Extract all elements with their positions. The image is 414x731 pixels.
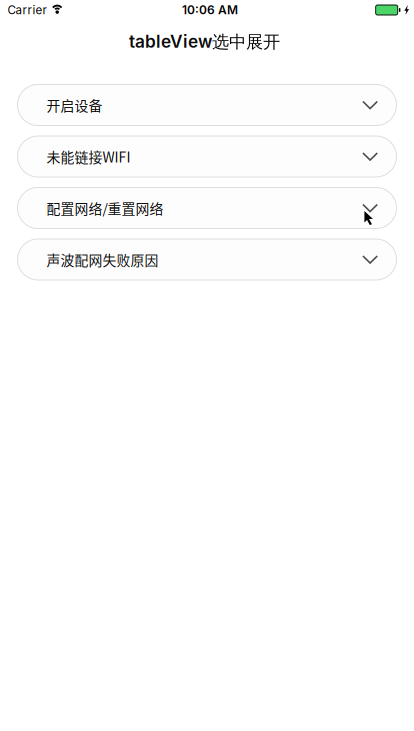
- staticText: 开启设备: [46, 95, 102, 115]
- staticText: tableView选中展开: [129, 31, 280, 53]
- button[interactable]: 开启设备: [17, 84, 396, 125]
- button[interactable]: 未能链接WIFI: [17, 136, 396, 177]
- staticText: 10:06 AM: [182, 3, 238, 17]
- staticText: 配置网络/重置网络: [46, 198, 163, 218]
- staticText: Carrier: [7, 3, 46, 17]
- staticText: 声波配网失败原因: [46, 249, 158, 270]
- button[interactable]: 声波配网失败原因: [17, 239, 396, 280]
- staticText: 未能链接WIFI: [46, 146, 130, 167]
- button[interactable]: 配置网络/重置网络: [17, 187, 396, 228]
